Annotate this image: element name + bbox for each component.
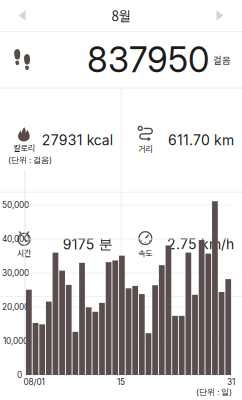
staticText: 속도 [138, 247, 152, 258]
staticText: (단위 : 일) [196, 387, 232, 397]
button[interactable]: 속도 [121, 229, 242, 260]
staticText: (단위 : 걸음) [8, 155, 52, 165]
staticText: 거리 [138, 143, 152, 154]
staticText: 08/01 [23, 377, 44, 387]
staticText: 30,000 [2, 268, 29, 278]
staticText: 27931 kcal [42, 132, 113, 148]
staticText: 걸음 [213, 53, 231, 66]
staticText: 0 [17, 370, 22, 380]
staticText: 20,000 [2, 302, 29, 312]
staticText: 611.70 km [168, 132, 234, 148]
button[interactable]: Next month [198, 0, 242, 31]
staticText: 15 [117, 377, 125, 387]
button[interactable]: 거리 [121, 125, 242, 156]
staticText: 9175 분 [63, 235, 113, 253]
staticText: 31 [227, 377, 235, 387]
staticText: 837950 [87, 39, 209, 81]
staticText: 50,000 [2, 200, 29, 210]
staticText: 시간 [17, 247, 31, 258]
staticText: 2.75 km/h [167, 236, 234, 253]
button[interactable]: 칼로리 [0, 125, 121, 156]
staticText: 10,000 [3, 336, 28, 346]
button[interactable]: Previous month [0, 0, 44, 31]
staticText: 칼로리 [13, 142, 34, 153]
staticText: 8월 [111, 6, 130, 25]
button[interactable]: 시간 [0, 229, 121, 260]
staticText: 40,000 [2, 234, 29, 244]
